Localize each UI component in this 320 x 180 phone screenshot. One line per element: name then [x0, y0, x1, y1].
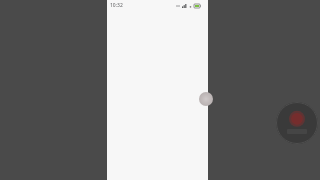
- staticText: 10:32: [110, 2, 123, 9]
- button[interactable]: Record: [276, 102, 318, 144]
- button[interactable]: Floating control: [199, 92, 213, 106]
